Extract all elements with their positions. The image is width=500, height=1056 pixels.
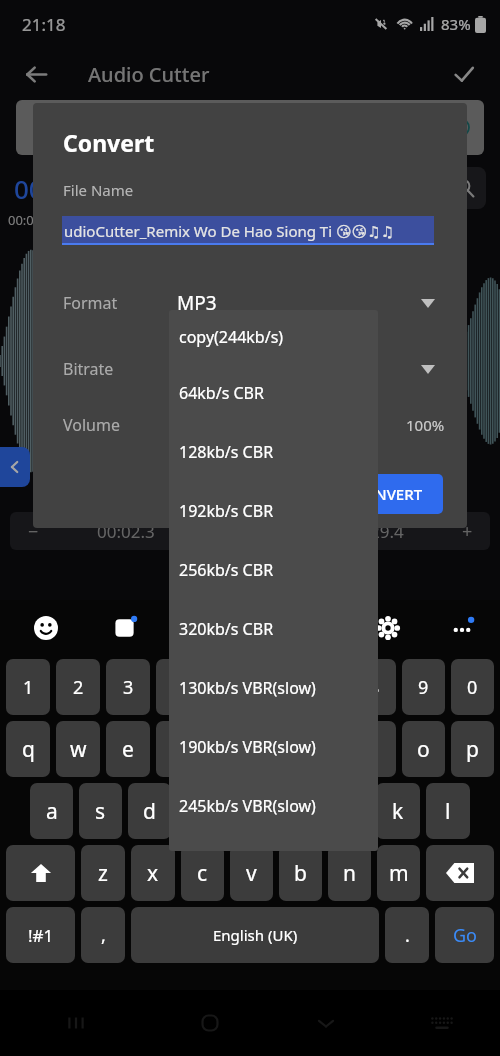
button[interactable]: Search <box>444 167 486 209</box>
staticText: Format <box>63 292 177 314</box>
button[interactable]: e <box>106 721 150 777</box>
staticText: 1 <box>23 675 34 700</box>
staticText: x <box>147 859 159 888</box>
button[interactable]: Backspace <box>426 845 494 901</box>
button[interactable]: Bitrate <box>63 347 467 391</box>
button[interactable]: 00:02.3 <box>56 512 195 550</box>
staticText: 245kb/s VBR(slow) <box>179 795 316 817</box>
button[interactable]: 128kb/s CBR <box>169 422 378 481</box>
button[interactable]: Format <box>63 281 467 325</box>
staticText: MP3 <box>177 290 217 316</box>
button[interactable]: l <box>426 783 470 839</box>
button[interactable]: 2 <box>56 659 100 715</box>
staticText: 00:02.3 <box>97 520 155 543</box>
button[interactable]: b <box>279 845 322 901</box>
button[interactable]: English (UK) <box>131 907 379 963</box>
button[interactable]: More options <box>442 608 482 648</box>
button[interactable]: 【 <box>16 100 484 155</box>
button[interactable]: s <box>79 783 122 839</box>
button[interactable]: CONVERT <box>334 474 443 514</box>
button[interactable]: Go <box>435 907 494 963</box>
button[interactable]: a <box>30 783 73 839</box>
button[interactable]: r <box>156 721 200 777</box>
button[interactable]: t <box>206 721 249 777</box>
button[interactable]: Decrease <box>259 512 305 550</box>
button[interactable]: 192kb/s CBR <box>169 481 378 540</box>
button[interactable]: 1 <box>6 659 50 715</box>
button[interactable]: . <box>385 907 429 963</box>
staticText: 192kb/s CBR <box>179 500 274 522</box>
button[interactable]: k <box>376 783 420 839</box>
button[interactable]: 00:29.4 <box>305 512 444 550</box>
button[interactable]: v <box>230 845 273 901</box>
staticText: 320kb/s CBR <box>179 618 274 640</box>
staticText: Go <box>453 923 477 948</box>
staticText: 256kb/s CBR <box>179 559 274 581</box>
button[interactable]: d <box>128 783 171 839</box>
staticText: 0 <box>467 675 478 700</box>
button[interactable]: Done <box>442 52 486 96</box>
button[interactable]: 3 <box>106 659 150 715</box>
button[interactable]: 5 <box>206 659 249 715</box>
staticText: p <box>466 735 479 764</box>
staticText: Bitrate <box>63 358 177 380</box>
button[interactable]: 245kb/s VBR(slow) <box>169 776 378 835</box>
staticText: d <box>143 797 156 826</box>
button[interactable]: Stickers <box>105 608 145 648</box>
button[interactable]: Previous <box>0 447 30 487</box>
staticText: e <box>122 735 134 764</box>
button[interactable]: 130kb/s VBR(slow) <box>169 658 378 717</box>
button[interactable]: u <box>304 721 347 777</box>
button[interactable]: w <box>56 721 100 777</box>
staticText: CONVERT <box>354 484 423 504</box>
button[interactable]: q <box>6 721 50 777</box>
button[interactable]: Decrease <box>10 512 56 550</box>
button[interactable]: o <box>402 721 445 777</box>
button[interactable]: Shift <box>6 845 75 901</box>
button[interactable]: 320kb/s CBR <box>169 599 378 658</box>
staticText: 190kb/s VBR(slow) <box>179 736 316 758</box>
button[interactable]: 64kb/s CBR <box>169 363 378 422</box>
button[interactable]: f <box>177 783 220 839</box>
button[interactable]: 4 <box>156 659 200 715</box>
button[interactable]: i <box>353 721 396 777</box>
button[interactable]: 7 <box>304 659 347 715</box>
button[interactable]: x <box>131 845 175 901</box>
staticText: a <box>46 797 58 826</box>
button[interactable]: copy(244kb/s) <box>169 310 378 363</box>
button[interactable]: m <box>377 845 420 901</box>
button[interactable]: !#1 <box>6 907 75 963</box>
button[interactable]: z <box>81 845 125 901</box>
button[interactable]: Increase <box>444 512 490 550</box>
button[interactable]: 9 <box>402 659 445 715</box>
button[interactable]: 0 <box>451 659 494 715</box>
staticText: c <box>197 859 208 888</box>
staticText: 128kb/s CBR <box>179 441 274 463</box>
button[interactable]: udioCutter_Remix Wo De Hao Siong Ti 😘😘♫♫ <box>62 216 434 245</box>
button[interactable]: Emoji <box>26 608 66 648</box>
button[interactable]: 6 <box>255 659 298 715</box>
button[interactable]: n <box>328 845 371 901</box>
button[interactable]: p <box>451 721 494 777</box>
button[interactable]: Settings <box>368 608 408 648</box>
button[interactable]: , <box>81 907 125 963</box>
button[interactable]: Increase <box>195 512 241 550</box>
staticText: 00:29.4 <box>346 520 404 543</box>
button[interactable]: Back <box>14 52 58 96</box>
button[interactable]: 8 <box>353 659 396 715</box>
button[interactable]: y <box>255 721 298 777</box>
button[interactable]: 256kb/s CBR <box>169 540 378 599</box>
button[interactable]: c <box>181 845 224 901</box>
staticText: s <box>95 797 106 826</box>
staticText: 3 <box>123 675 134 700</box>
button[interactable]: h <box>276 783 320 839</box>
button[interactable]: 190kb/s VBR(slow) <box>169 717 378 776</box>
button[interactable]: g <box>226 783 270 839</box>
